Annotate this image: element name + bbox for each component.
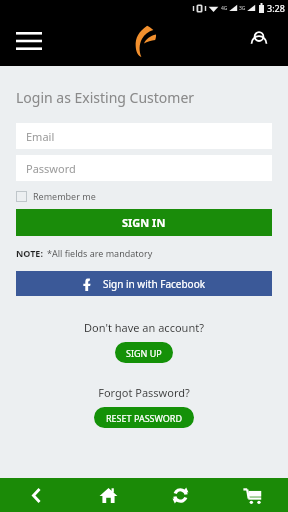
staticText: Password xyxy=(26,161,76,176)
staticText: 4G xyxy=(221,5,228,12)
staticText: Don't have an account? xyxy=(16,320,272,335)
button[interactable]: Email xyxy=(16,123,272,149)
staticText: *All fields are mandatory xyxy=(47,247,153,259)
staticText: Login as Existing Customer xyxy=(16,88,195,107)
staticText: Remember me xyxy=(33,190,96,202)
button[interactable]: Cart xyxy=(216,478,288,512)
button[interactable]: Menu xyxy=(10,24,48,58)
staticText: 3G xyxy=(239,5,246,12)
staticText: Email xyxy=(26,129,55,144)
button[interactable]: Refresh xyxy=(144,478,216,512)
button[interactable]: Sign in with Facebook xyxy=(16,271,272,296)
staticText: NOTE: xyxy=(16,247,43,259)
button[interactable]: Remember me xyxy=(16,189,96,203)
staticText: SIGN UP xyxy=(126,347,162,359)
button[interactable]: RESET PASSWORD xyxy=(94,407,194,428)
button[interactable]: Home xyxy=(72,478,144,512)
staticText: Sign in with Facebook xyxy=(103,277,206,291)
button[interactable]: SIGN UP xyxy=(115,342,173,363)
staticText: 3:28 xyxy=(267,2,285,14)
staticText: Forgot Password? xyxy=(16,385,272,400)
button[interactable]: SIGN IN xyxy=(16,209,272,236)
button[interactable]: Account xyxy=(240,22,278,60)
staticText: RESET PASSWORD xyxy=(106,412,182,424)
button[interactable]: Password xyxy=(16,155,272,181)
staticText: SIGN IN xyxy=(122,215,166,230)
button[interactable]: Back xyxy=(0,478,72,512)
